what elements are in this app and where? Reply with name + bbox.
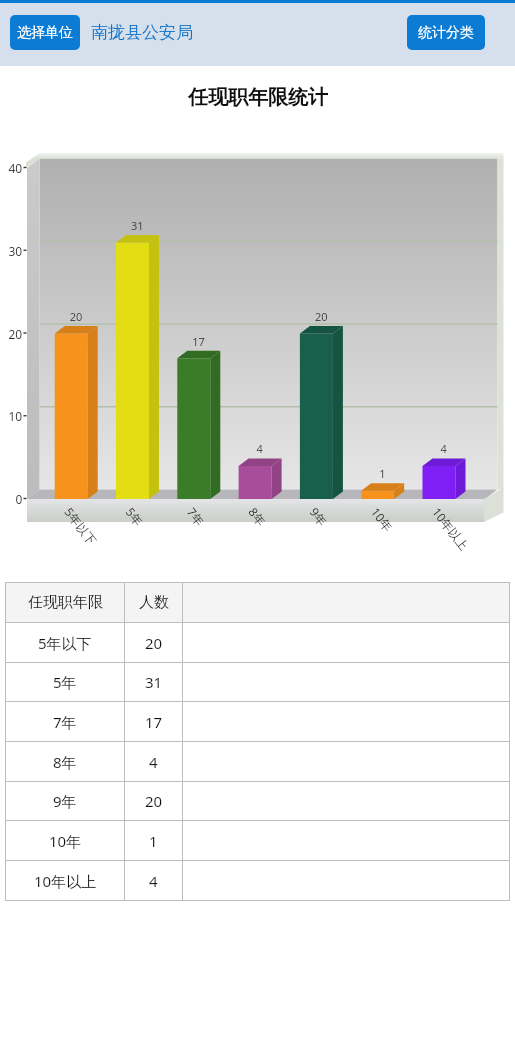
staticText: 任现职年限	[28, 593, 103, 612]
staticText: 20	[145, 633, 163, 653]
staticText: 选择单位	[17, 24, 73, 42]
staticText: 9年	[53, 791, 77, 811]
staticText: 17	[145, 712, 163, 732]
staticText: 1	[149, 831, 158, 851]
button[interactable]: 统计分类	[407, 15, 485, 50]
staticText: 20	[145, 791, 163, 811]
staticText: 4	[149, 871, 158, 891]
staticText: 10年	[49, 831, 82, 851]
staticText: 5年	[53, 672, 77, 692]
staticText: 10年以上	[34, 871, 97, 891]
staticText: 南拢县公安局	[91, 22, 193, 43]
staticText: 4	[149, 752, 158, 772]
staticText: 人数	[139, 593, 169, 612]
staticText: 5年以下	[38, 633, 92, 653]
staticText: 7年	[53, 712, 77, 732]
button[interactable]: 选择单位	[10, 15, 80, 50]
staticText: 31	[145, 672, 163, 692]
staticText: 任现职年限统计	[188, 85, 328, 110]
staticText: 统计分类	[418, 24, 474, 42]
staticText: 8年	[53, 752, 77, 772]
